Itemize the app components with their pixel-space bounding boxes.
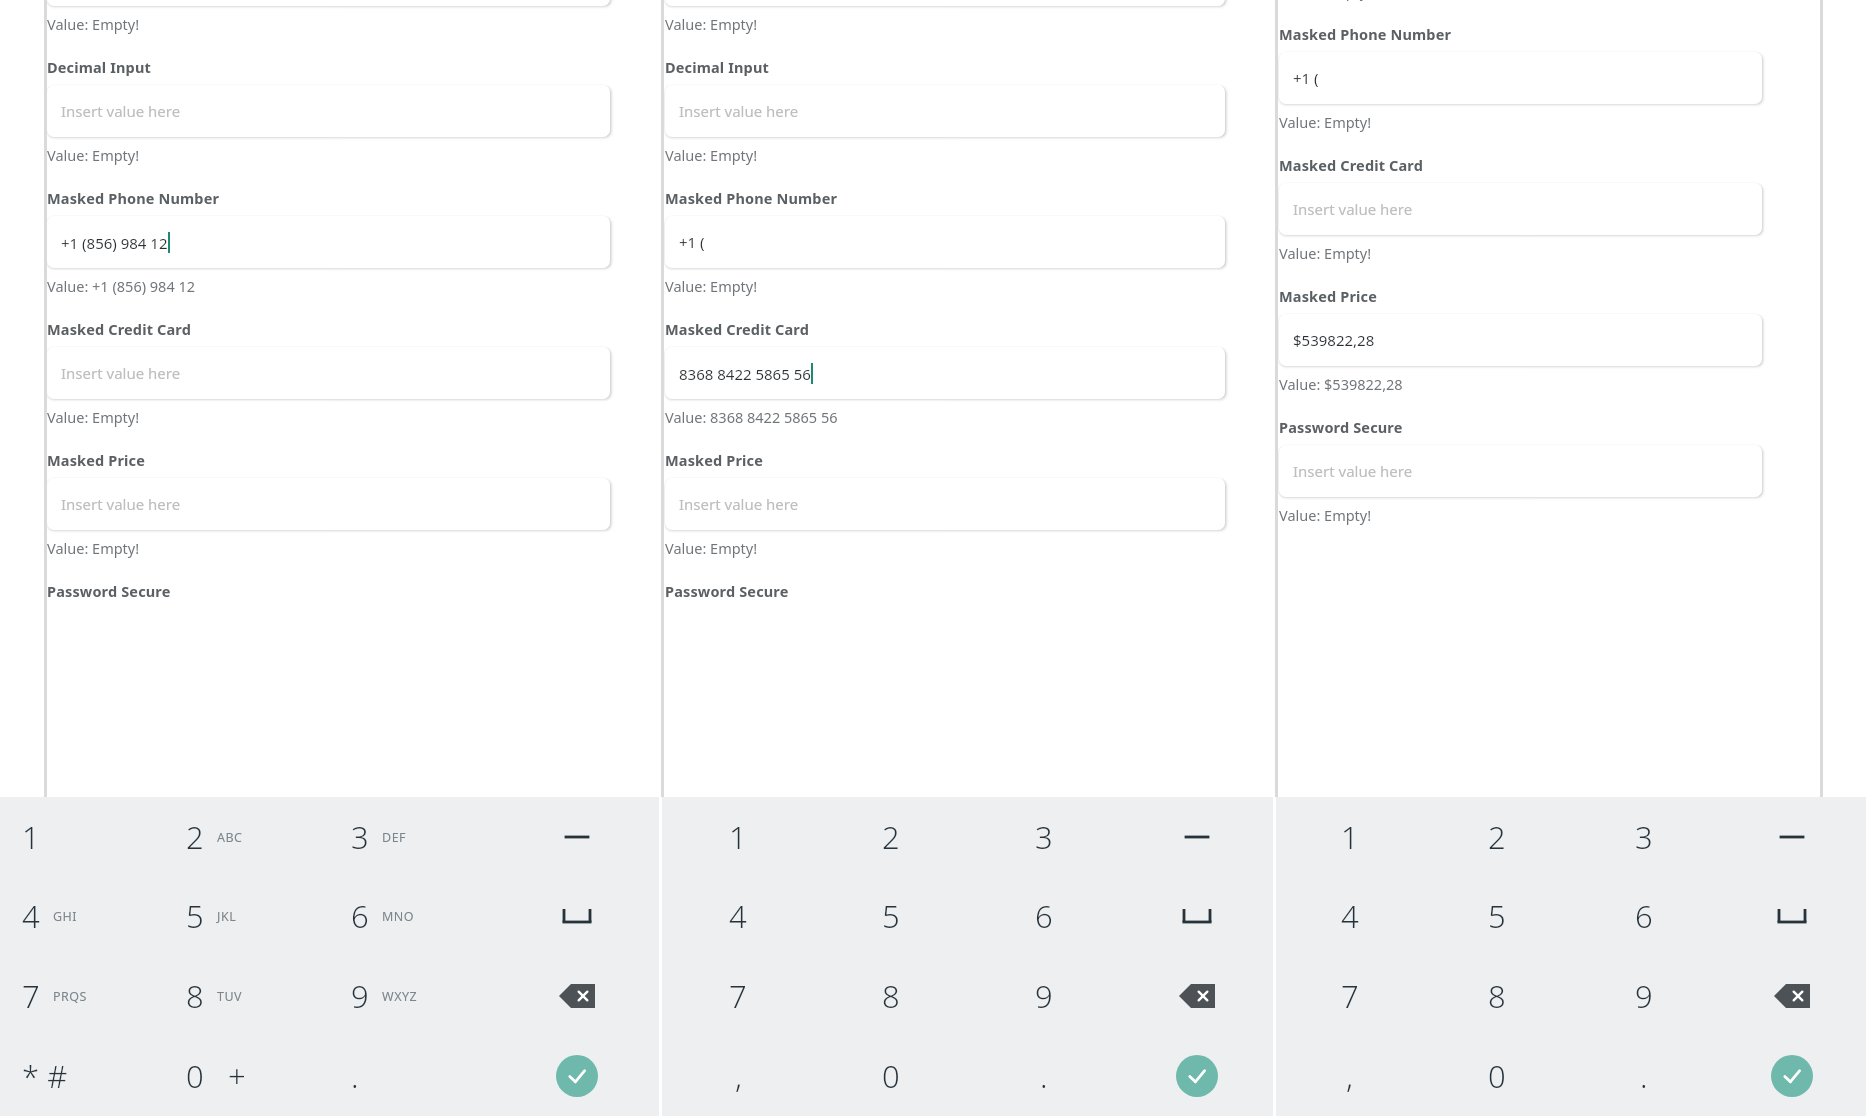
button[interactable]: 8 bbox=[814, 956, 967, 1036]
staticText: GHI bbox=[53, 908, 78, 925]
staticText: 0 + bbox=[186, 1055, 246, 1097]
staticText: , bbox=[1346, 1055, 1353, 1097]
button[interactable]: +1 ( bbox=[665, 216, 1225, 268]
button[interactable]: Space bbox=[1120, 876, 1273, 956]
button[interactable]: 4 bbox=[662, 876, 814, 956]
staticText: 8 bbox=[882, 975, 900, 1017]
button[interactable]: 1 bbox=[1276, 797, 1423, 876]
button[interactable]: Done bbox=[1120, 1036, 1273, 1116]
staticText: 6 bbox=[351, 895, 369, 937]
button[interactable]: Insert value here bbox=[1279, 445, 1762, 497]
button[interactable]: 8 bbox=[164, 956, 329, 1036]
button[interactable]: 1 bbox=[0, 797, 164, 876]
button[interactable]: +1 ( bbox=[1279, 52, 1762, 104]
button[interactable]: . bbox=[329, 1036, 494, 1116]
staticText: Masked Phone Number bbox=[665, 188, 838, 208]
button[interactable]: , bbox=[662, 1036, 814, 1116]
button[interactable]: Insert value here bbox=[47, 347, 610, 399]
button[interactable]: Backspace bbox=[1120, 956, 1273, 1036]
button[interactable]: 5 bbox=[814, 876, 967, 956]
button[interactable]: 2 bbox=[1423, 797, 1570, 876]
button[interactable]: 1 bbox=[662, 797, 814, 876]
button[interactable]: 7 bbox=[0, 956, 164, 1036]
staticText: Value: Empty! bbox=[665, 14, 758, 34]
staticText: 9 bbox=[1635, 975, 1653, 1017]
button[interactable]: Minus bbox=[494, 797, 659, 876]
button[interactable]: 7 bbox=[1276, 956, 1423, 1036]
staticText: . bbox=[351, 1055, 359, 1097]
staticText: Value: Empty! bbox=[1279, 243, 1372, 263]
button[interactable]: 5 bbox=[1423, 876, 1570, 956]
button[interactable]: 9 bbox=[967, 956, 1120, 1036]
button[interactable]: Insert value here bbox=[1279, 183, 1762, 235]
button[interactable]: Done bbox=[1718, 1036, 1866, 1116]
staticText: Value: Empty! bbox=[1279, 112, 1372, 132]
button[interactable]: 0 + bbox=[164, 1036, 329, 1116]
button[interactable]: Insert value here bbox=[47, 478, 610, 530]
button[interactable]: $539822,28 bbox=[1279, 314, 1762, 366]
button[interactable]: +1 (856) 984 12 bbox=[47, 216, 610, 268]
button[interactable]: 3 bbox=[967, 797, 1120, 876]
staticText: Insert value here bbox=[61, 494, 181, 514]
button[interactable]: 8 bbox=[1423, 956, 1570, 1036]
staticText: Decimal Input bbox=[665, 57, 769, 77]
staticText: TUV bbox=[217, 988, 243, 1005]
staticText: 5 bbox=[1488, 895, 1506, 937]
staticText: 0 bbox=[1488, 1055, 1506, 1097]
staticText: Value: Empty! bbox=[47, 14, 140, 34]
button[interactable]: 3 bbox=[329, 797, 494, 876]
button[interactable]: 2 bbox=[814, 797, 967, 876]
button[interactable]: 7 bbox=[662, 956, 814, 1036]
button[interactable]: . bbox=[1570, 1036, 1718, 1116]
staticText: ABC bbox=[217, 829, 243, 846]
button[interactable]: Space bbox=[494, 876, 659, 956]
button[interactable]: Minus bbox=[1718, 797, 1866, 876]
button[interactable]: 4 bbox=[1276, 876, 1423, 956]
button[interactable]: Space bbox=[1718, 876, 1866, 956]
button[interactable]: 0 bbox=[814, 1036, 967, 1116]
staticText: Value: $539822,28 bbox=[1279, 374, 1403, 394]
button[interactable]: 4 bbox=[0, 876, 164, 956]
staticText: 8 bbox=[186, 975, 204, 1017]
staticText: 1 bbox=[22, 816, 40, 858]
button[interactable]: Minus bbox=[1120, 797, 1273, 876]
staticText: Masked Credit Card bbox=[665, 319, 809, 339]
staticText: 3 bbox=[1035, 816, 1053, 858]
button[interactable]: 9 bbox=[1570, 956, 1718, 1036]
staticText: Password Secure bbox=[665, 581, 789, 601]
staticText: 8 bbox=[1488, 975, 1506, 1017]
staticText: 2 bbox=[882, 816, 900, 858]
button[interactable]: 2 bbox=[164, 797, 329, 876]
button[interactable]: 0 bbox=[1423, 1036, 1570, 1116]
staticText: Insert value here bbox=[61, 363, 181, 383]
staticText: Masked Price bbox=[47, 450, 145, 470]
staticText: WXYZ bbox=[382, 988, 418, 1005]
staticText: DEF bbox=[382, 829, 407, 846]
staticText: Value: 8368 8422 5865 56 bbox=[665, 407, 838, 427]
button[interactable]: 6 bbox=[1570, 876, 1718, 956]
button[interactable]: 8368 8422 5865 56 bbox=[665, 347, 1225, 399]
staticText: 4 bbox=[729, 895, 747, 937]
staticText: 2 bbox=[186, 816, 204, 858]
staticText: 1 bbox=[729, 816, 747, 858]
button[interactable]: 6 bbox=[967, 876, 1120, 956]
button[interactable]: Insert value here bbox=[665, 478, 1225, 530]
staticText: 7 bbox=[1341, 975, 1359, 1017]
button[interactable]: , bbox=[1276, 1036, 1423, 1116]
staticText: 3 bbox=[1635, 816, 1653, 858]
button[interactable]: * # bbox=[0, 1036, 164, 1116]
button[interactable]: 9 bbox=[329, 956, 494, 1036]
button[interactable]: . bbox=[967, 1036, 1120, 1116]
button[interactable]: Backspace bbox=[1718, 956, 1866, 1036]
button[interactable]: Done bbox=[494, 1036, 659, 1116]
button[interactable]: 3 bbox=[1570, 797, 1718, 876]
staticText: 7 bbox=[729, 975, 747, 1017]
button[interactable]: 6 bbox=[329, 876, 494, 956]
button[interactable]: Backspace bbox=[494, 956, 659, 1036]
button[interactable]: Insert value here bbox=[665, 85, 1225, 137]
staticText: Masked Price bbox=[1279, 286, 1377, 306]
button[interactable]: 5 bbox=[164, 876, 329, 956]
button[interactable]: Insert value here bbox=[47, 85, 610, 137]
